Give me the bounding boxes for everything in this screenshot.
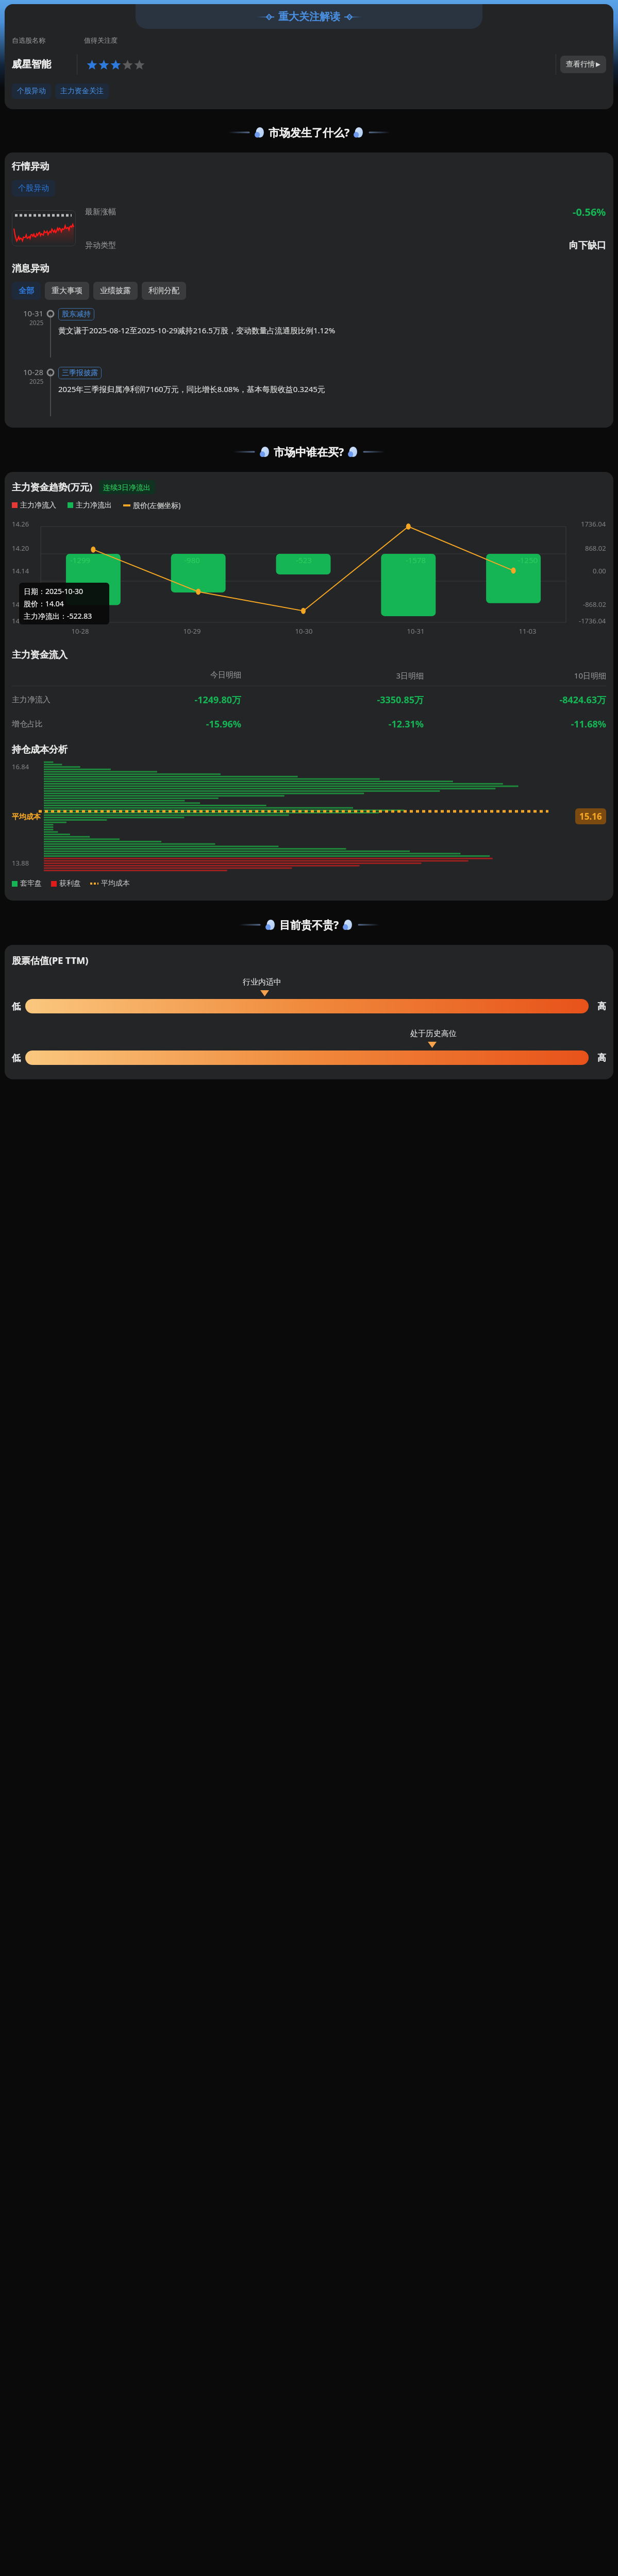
button[interactable]: 全部 [12,282,41,300]
staticText: 主力净流入 [12,695,59,705]
staticText: 10-30 [248,626,360,636]
staticText: -3350.85万 [241,693,424,706]
staticText: 威星智能 [12,58,77,71]
staticText: -11.68% [424,718,606,731]
staticText: 10-28 [24,626,136,636]
staticText: 2025 [29,377,44,385]
staticText: 利润分配 [148,286,179,296]
staticText: 14.07 [12,600,29,609]
button[interactable]: 业绩披露 [93,282,138,300]
staticText: 市场发生了什么? [269,125,350,140]
button[interactable]: 重大事项 [45,282,89,300]
staticText: 10-29 [136,626,248,636]
staticText: 868.02 [585,544,606,553]
staticText: 值得关注度 [84,36,118,44]
staticText: 股东减持 [62,310,91,319]
staticText: 日期：2025-10-30 [24,586,83,596]
staticText: 重大事项 [52,286,82,296]
staticText: 主力净流入 [20,501,56,510]
staticText: 获利盘 [59,879,81,888]
staticText: 11-03 [472,626,583,636]
staticText: 10-31 [23,308,44,318]
button[interactable]: 利润分配 [142,282,186,300]
staticText: 增仓占比 [12,719,59,729]
staticText: 个股异动 [17,87,46,96]
staticText: 14.26 [12,519,29,529]
staticText: 10日明细 [424,670,606,681]
staticText: -1578 [360,555,472,565]
staticText: 股价：14.04 [24,599,64,608]
staticText: 最新涨幅 [85,207,116,217]
staticText: 自选股名称 [12,36,84,44]
staticText: -1249.80万 [59,693,241,706]
staticText: -1250 [472,555,583,565]
staticText: 查看行情 [566,60,595,69]
staticText: 主力资金趋势(万元) [12,481,93,494]
staticText: -12.31% [241,718,424,731]
staticText: 连续3日净流出 [103,482,151,492]
staticText: -1736.04 [579,616,606,625]
button[interactable]: 10-31 [12,308,606,358]
staticText: 股价(左侧坐标) [133,500,181,510]
staticText: -523 [248,555,360,565]
staticText: 业绩披露 [100,286,131,296]
staticText: 主力资金关注 [60,87,104,96]
button[interactable]: 个股异动 [12,83,51,99]
staticText: -15.96% [59,718,241,731]
staticText: 主力资金流入 [12,649,68,661]
staticText: 黄文谦于2025-08-12至2025-10-29减持216.5万股，变动数量占… [58,325,336,335]
staticText: 1736.04 [581,519,606,529]
staticText: 个股异动 [18,183,49,193]
staticText: 10-28 [23,367,44,377]
staticText: 主力净流出：-522.83 [24,611,92,621]
staticText: 市场中谁在买? [274,445,344,460]
staticText: 主力净流出 [76,501,112,510]
staticText: 今日明细 [59,670,241,680]
staticText: -8424.63万 [424,693,606,706]
staticText: 股票估值(PE TTM) [12,954,89,967]
staticText: 高 [589,1001,606,1012]
button[interactable]: 个股异动 [12,180,55,197]
staticText: -0.56% [573,205,606,219]
staticText: 15.16 [579,810,602,822]
staticText: 套牢盘 [20,879,42,888]
staticText: 行情异动 [12,161,49,173]
staticText: 重大关注解读 [278,10,340,23]
staticText: 3日明细 [241,670,424,681]
staticText: 持仓成本分析 [12,744,68,756]
button[interactable]: 主力资金关注 [55,83,109,99]
staticText: 三季报披露 [62,368,98,378]
staticText: 行业内适中 [243,977,281,987]
button[interactable]: 查看行情 [560,56,606,73]
staticText: 高 [589,1053,606,1063]
staticText: 低 [12,1053,25,1063]
staticText: 低 [12,1001,25,1012]
staticText: 16.84 [12,762,29,771]
staticText: 14.14 [12,566,29,575]
staticText: 2025 [29,318,44,327]
staticText: 平均成本 [101,879,130,888]
staticText: 全部 [19,286,34,296]
staticText: 消息异动 [12,263,49,275]
staticText: 10-31 [360,626,472,636]
staticText: 14.20 [12,544,29,553]
button[interactable]: 10-28 [12,367,606,416]
staticText: 0.00 [593,566,606,575]
staticText: -868.02 [583,600,606,609]
staticText: 14.01 [12,616,29,625]
staticText: 目前贵不贵? [279,918,339,933]
staticText: 向下缺口 [569,240,606,251]
staticText: 异动类型 [85,241,116,250]
staticText: 处于历史高位 [410,1029,457,1039]
staticText: 平均成本 [12,812,41,822]
staticText: -980 [136,555,248,565]
staticText: 13.88 [12,858,29,868]
staticText: -1299 [24,555,136,565]
staticText: 2025年三季报归属净利润7160万元，同比增长8.08%，基本每股收益0.32… [58,384,325,394]
